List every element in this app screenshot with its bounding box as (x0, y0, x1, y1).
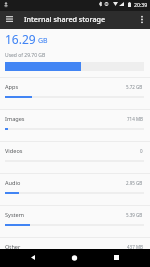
staticText: 16.29 (5, 31, 36, 47)
staticText: 5.39 GB (126, 212, 143, 218)
staticText: Videos (5, 147, 23, 155)
button[interactable]: Navigation menu (0, 11, 19, 29)
button[interactable]: Images (0, 109, 150, 141)
button[interactable]: Home (57, 249, 91, 267)
staticText: 2.95 GB (126, 180, 143, 186)
staticText: System (5, 211, 25, 219)
staticText: Images (5, 115, 25, 123)
button[interactable]: Back (16, 249, 50, 267)
staticText: 5.72 GB (126, 84, 143, 90)
staticText: Other (5, 243, 21, 251)
staticText: 20:39 (134, 1, 148, 8)
staticText: Apps (5, 83, 19, 91)
button[interactable]: Recent apps (99, 249, 133, 267)
button[interactable]: Videos (0, 141, 150, 173)
staticText: Used of 29.70 GB (5, 52, 46, 59)
button[interactable]: Apps (0, 77, 150, 109)
button[interactable]: Audio (0, 173, 150, 205)
staticText: Audio (5, 179, 21, 187)
staticText: Internal shared storage (24, 14, 106, 24)
staticText: 0 (140, 148, 143, 154)
staticText: GB (38, 36, 48, 46)
button[interactable]: System (0, 205, 150, 237)
button[interactable]: More options (134, 11, 150, 29)
button[interactable]: Other (0, 237, 150, 267)
staticText: 714 MB (127, 116, 143, 122)
staticText: 437 MB (127, 244, 143, 250)
